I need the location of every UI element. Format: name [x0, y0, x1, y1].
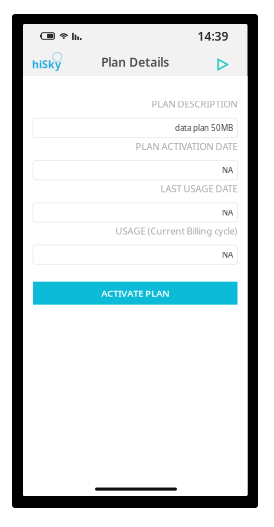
staticText: USAGE (Current Billing cycle)	[115, 225, 237, 237]
button[interactable]: Activate	[211, 52, 242, 72]
staticText: 14:39	[197, 28, 228, 44]
staticText: data plan 50MB	[175, 122, 233, 133]
button[interactable]: ACTIVATE PLAN	[33, 282, 237, 305]
staticText: NA	[222, 249, 233, 260]
staticText: hiSky	[32, 57, 61, 71]
button[interactable]: hiSky	[28, 51, 64, 73]
staticText: NA	[222, 207, 233, 218]
staticText: ACTIVATE PLAN	[101, 287, 169, 299]
staticText: PLAN DESCRIPTION	[151, 98, 237, 110]
staticText: LAST USAGE DATE	[160, 182, 237, 195]
staticText: PLAN ACTIVATION DATE	[135, 140, 237, 152]
staticText: Plan Details	[101, 54, 169, 70]
staticText: NA	[222, 165, 233, 175]
